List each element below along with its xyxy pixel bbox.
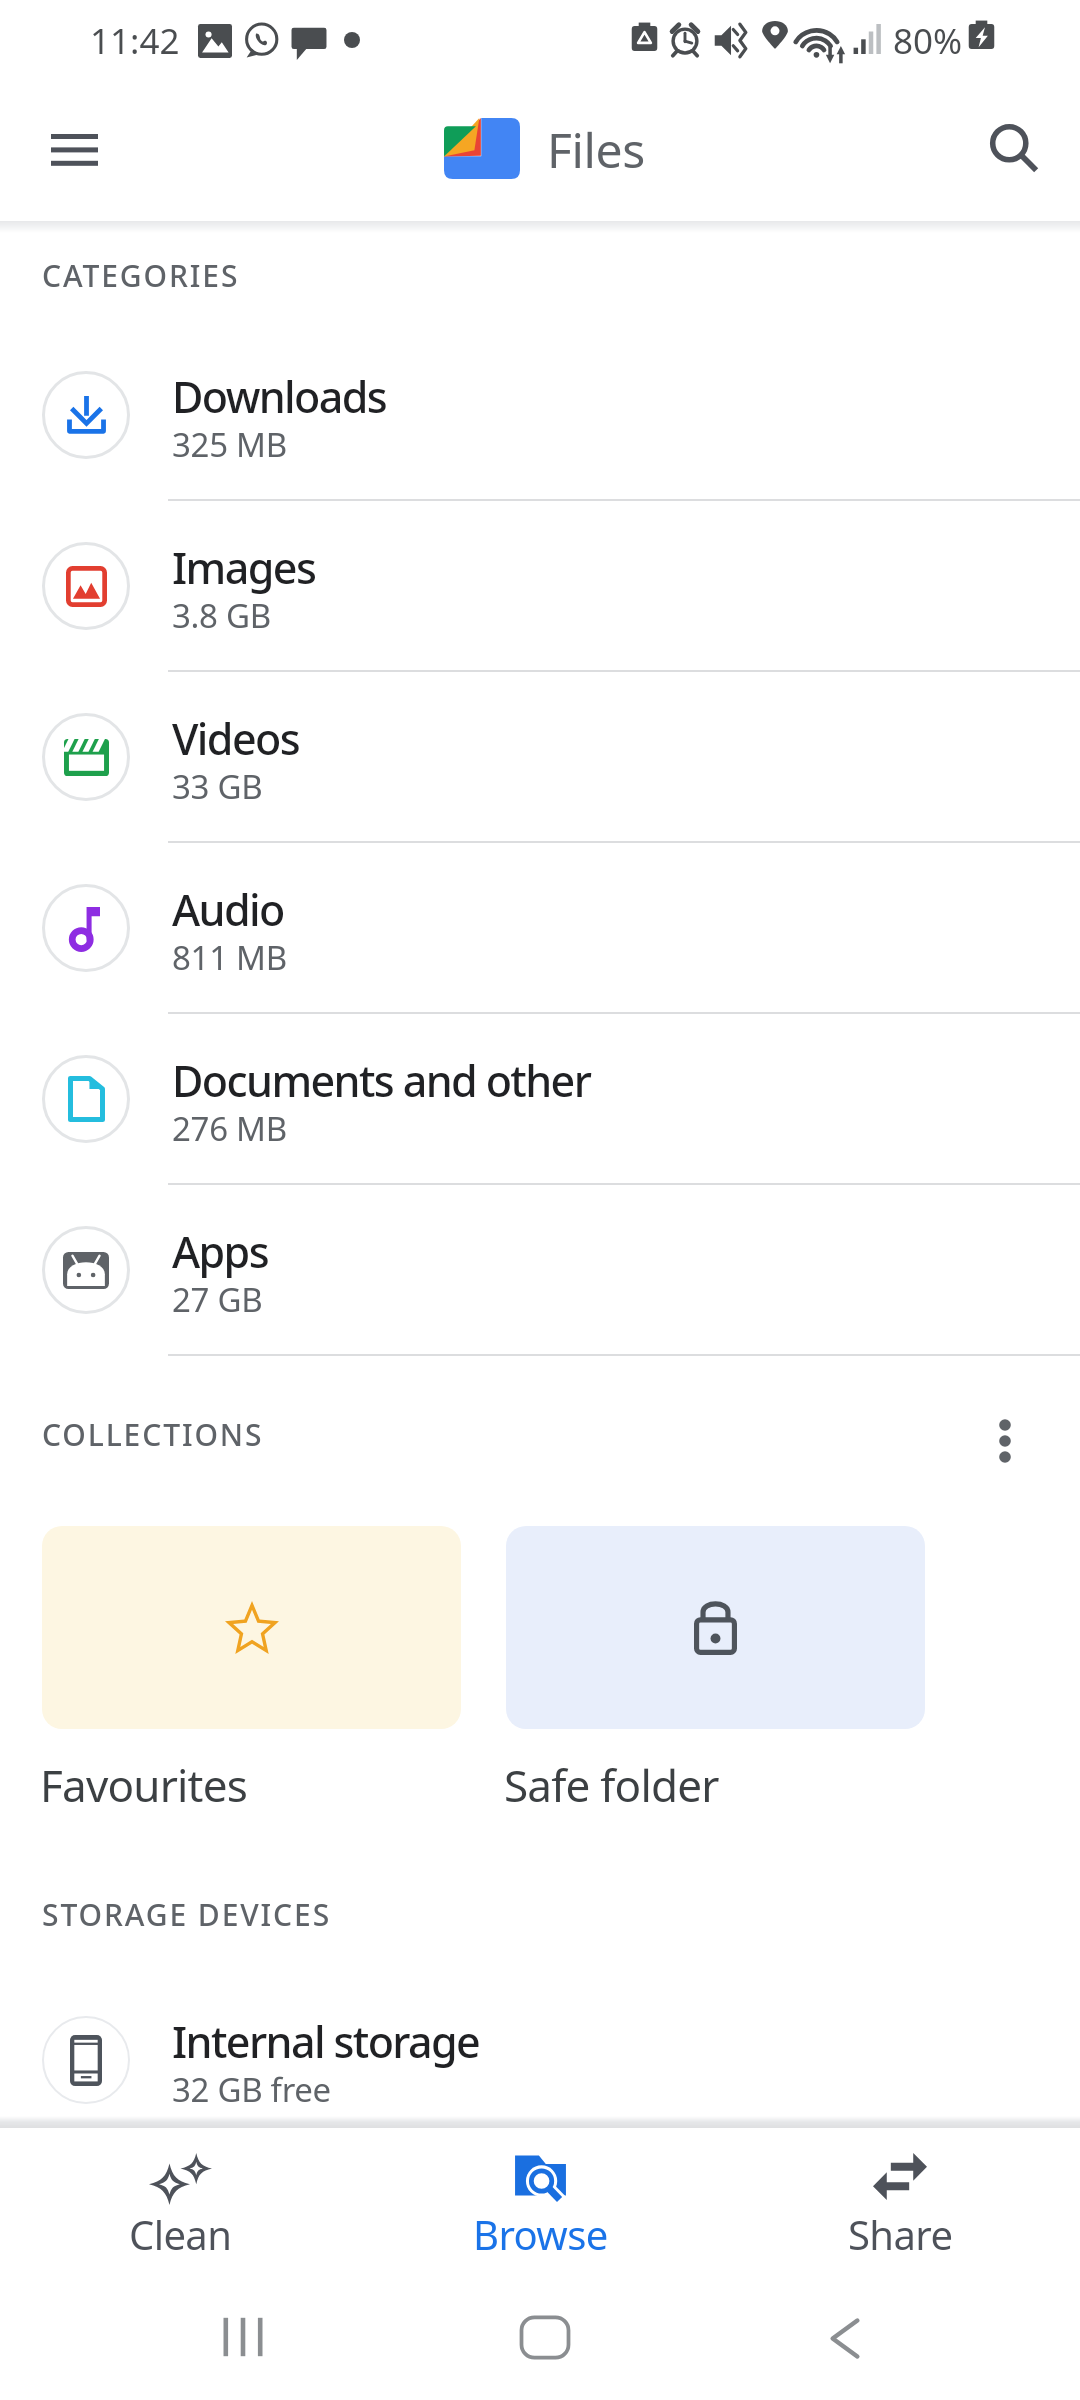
- button[interactable]: Share: [720, 2129, 1080, 2270]
- button[interactable]: Downloads: [0, 329, 1080, 500]
- button[interactable]: Open navigation menu: [26, 102, 122, 198]
- staticText: Downloads: [172, 367, 387, 426]
- button[interactable]: Internal storage: [0, 1974, 1080, 2145]
- button[interactable]: Videos: [0, 671, 1080, 842]
- staticText: Favourites: [40, 1755, 247, 1815]
- staticText: 32 GB free: [172, 2067, 331, 2112]
- staticText: Safe folder: [504, 1755, 719, 1815]
- staticText: 27 GB: [172, 1277, 263, 1322]
- button[interactable]: Clean: [0, 2129, 360, 2270]
- button[interactable]: Browse: [360, 2129, 720, 2270]
- staticText: Videos: [172, 709, 299, 768]
- staticText: Apps: [172, 1222, 268, 1281]
- button[interactable]: Documents and other: [0, 1013, 1080, 1184]
- button[interactable]: Recent apps: [183, 2277, 303, 2397]
- staticText: 811 MB: [172, 935, 287, 980]
- staticText: 325 MB: [172, 422, 287, 467]
- button[interactable]: Back: [785, 2278, 905, 2398]
- staticText: Audio: [172, 880, 284, 939]
- staticText: 276 MB: [172, 1106, 287, 1151]
- button[interactable]: Home: [485, 2277, 605, 2397]
- staticText: 33 GB: [172, 764, 263, 809]
- staticText: Share: [848, 2207, 953, 2261]
- staticText: CATEGORIES: [42, 255, 240, 296]
- staticText: 11:42: [90, 17, 180, 65]
- staticText: 80%: [893, 17, 963, 65]
- staticText: Internal storage: [172, 2012, 480, 2071]
- button[interactable]: More options: [960, 1396, 1050, 1486]
- button[interactable]: Favourites: [42, 1526, 461, 1815]
- button[interactable]: Safe folder: [506, 1526, 925, 1815]
- button[interactable]: Search: [967, 101, 1063, 197]
- button[interactable]: Images: [0, 500, 1080, 671]
- staticText: 3.8 GB: [172, 593, 271, 638]
- staticText: Browse: [473, 2207, 608, 2261]
- staticText: Clean: [129, 2207, 232, 2261]
- staticText: Files: [547, 117, 645, 182]
- staticText: STORAGE DEVICES: [42, 1894, 332, 1935]
- staticText: Documents and other: [172, 1051, 591, 1110]
- staticText: COLLECTIONS: [42, 1414, 264, 1455]
- button[interactable]: Apps: [0, 1184, 1080, 1355]
- staticText: Images: [172, 538, 316, 597]
- button[interactable]: Audio: [0, 842, 1080, 1013]
